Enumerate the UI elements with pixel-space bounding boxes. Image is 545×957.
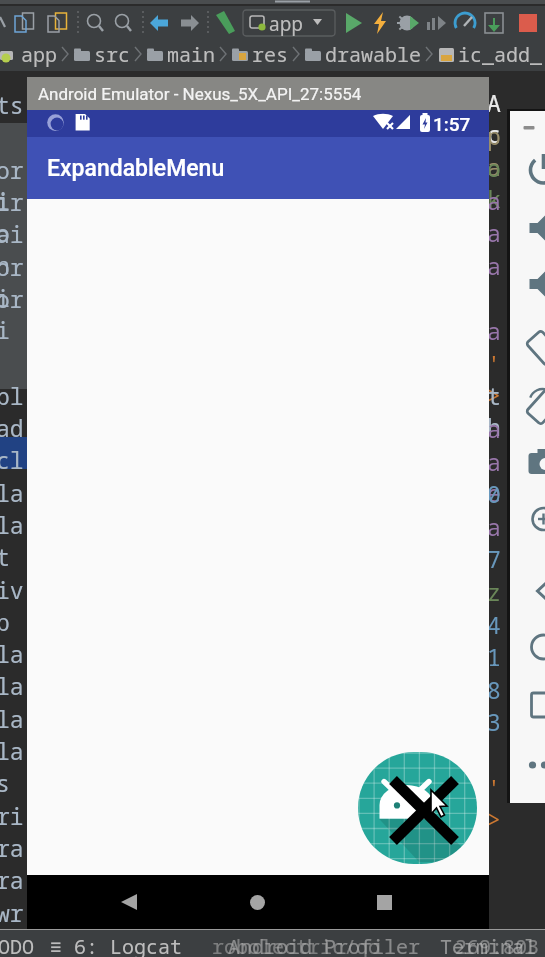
- staticText: th: [487, 380, 507, 442]
- staticText: 0: [487, 478, 501, 509]
- staticText: Android Emulator - Nexus_5X_API_27:5554: [38, 84, 362, 104]
- staticText: a: [487, 413, 501, 444]
- staticText: p: [0, 606, 10, 637]
- staticText: la: [0, 477, 24, 508]
- staticText: ok: [487, 152, 507, 214]
- staticText: ra: [0, 864, 24, 895]
- staticText: la: [0, 735, 24, 766]
- staticText: la: [0, 509, 24, 540]
- staticText: iv: [0, 574, 24, 605]
- staticText: ain: [0, 218, 24, 280]
- staticText: app: [269, 11, 304, 37]
- staticText: 8: [487, 674, 501, 705]
- staticText: Ac: [487, 87, 507, 149]
- staticText: drawable: [325, 41, 421, 68]
- button[interactable]: Home: [193, 875, 321, 929]
- button[interactable]: ExpandableMenu: [27, 137, 489, 199]
- staticText: '>: [487, 348, 507, 410]
- staticText: 7: [487, 543, 501, 574]
- staticText: bl: [0, 380, 24, 411]
- staticText: '>: [487, 772, 507, 834]
- staticText: cl: [0, 444, 24, 475]
- staticText: ≡ 6: Logcat: [50, 933, 182, 957]
- staticText: iro: [0, 186, 24, 248]
- staticText: s: [0, 767, 10, 798]
- staticText: ic_add_: [458, 41, 542, 68]
- staticText: la: [0, 670, 24, 701]
- staticText: 4: [487, 609, 501, 640]
- staticText: ra: [0, 832, 24, 863]
- staticText: ae: [487, 446, 507, 508]
- staticText: t: [0, 541, 10, 572]
- staticText: a: [487, 217, 501, 248]
- staticText: src: [94, 41, 130, 68]
- staticText: ts: [0, 89, 24, 120]
- staticText: main: [167, 41, 215, 68]
- staticText: z: [487, 576, 501, 607]
- staticText: 269:803: [455, 933, 539, 957]
- staticText: app: [21, 41, 57, 68]
- staticText: a: [487, 185, 501, 216]
- staticText: robolectric/qo: [212, 933, 380, 957]
- staticText: Android Profiler: [228, 933, 420, 957]
- button[interactable]: Back: [65, 875, 193, 929]
- staticText: Terminal: [440, 933, 536, 957]
- staticText: 1:57: [433, 113, 471, 135]
- staticText: res: [252, 41, 288, 68]
- staticText: ri: [0, 800, 24, 831]
- staticText: a: [487, 511, 501, 542]
- staticText: ori: [0, 283, 24, 345]
- staticText: ExpandableMenu: [47, 155, 225, 182]
- staticText: 1: [487, 641, 501, 672]
- button[interactable]: Close expandable menu: [358, 752, 477, 864]
- button[interactable]: Recent apps: [320, 875, 448, 929]
- staticText: ODO: [0, 933, 34, 957]
- staticText: ori: [0, 154, 24, 216]
- staticText: a: [487, 315, 501, 346]
- staticText: a: [487, 250, 501, 281]
- staticText: la: [0, 638, 24, 669]
- staticText: pa: [487, 120, 507, 182]
- staticText: la: [0, 703, 24, 734]
- staticText: 3: [487, 706, 501, 737]
- staticText: ori: [0, 251, 24, 313]
- staticText: ad: [0, 412, 24, 443]
- staticText: wr: [0, 897, 24, 928]
